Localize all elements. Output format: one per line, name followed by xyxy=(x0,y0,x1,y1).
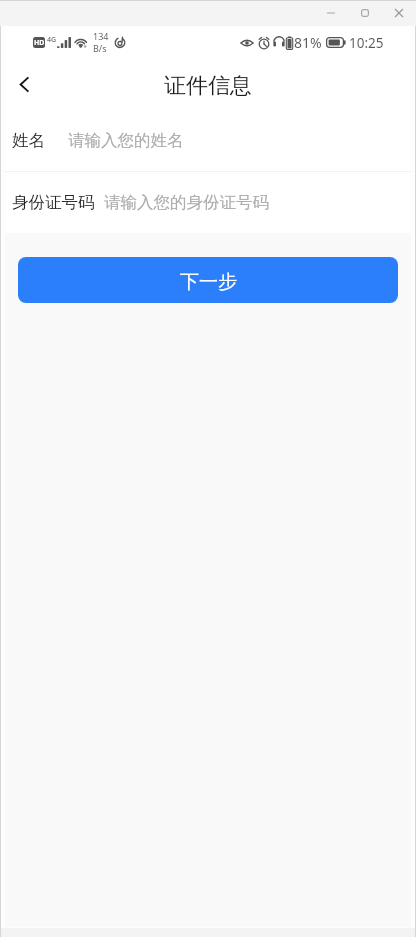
staticText: 姓名 xyxy=(12,130,59,151)
staticText: 请输入您的身份证号码 xyxy=(104,192,269,213)
staticText: 身份证号码 xyxy=(12,192,95,213)
staticText: B/s xyxy=(93,42,107,54)
button[interactable]: 下一步 xyxy=(18,257,398,303)
button[interactable]: Maximize xyxy=(351,0,379,26)
staticText: 下一步 xyxy=(180,270,237,294)
staticText: 4G xyxy=(47,35,57,45)
staticText: 81% xyxy=(294,33,322,52)
staticText: 10:25 xyxy=(349,34,384,52)
staticText: 证件信息 xyxy=(164,72,252,100)
button[interactable]: 身份证号码 xyxy=(5,172,411,233)
button[interactable]: 姓名 xyxy=(5,110,411,171)
button[interactable]: Minimize xyxy=(317,0,345,26)
staticText: HD xyxy=(34,38,45,48)
staticText: 请输入您的姓名 xyxy=(68,130,184,151)
staticText: 134 xyxy=(93,30,109,42)
button[interactable]: Close xyxy=(385,0,413,26)
button[interactable]: Back xyxy=(5,62,43,106)
